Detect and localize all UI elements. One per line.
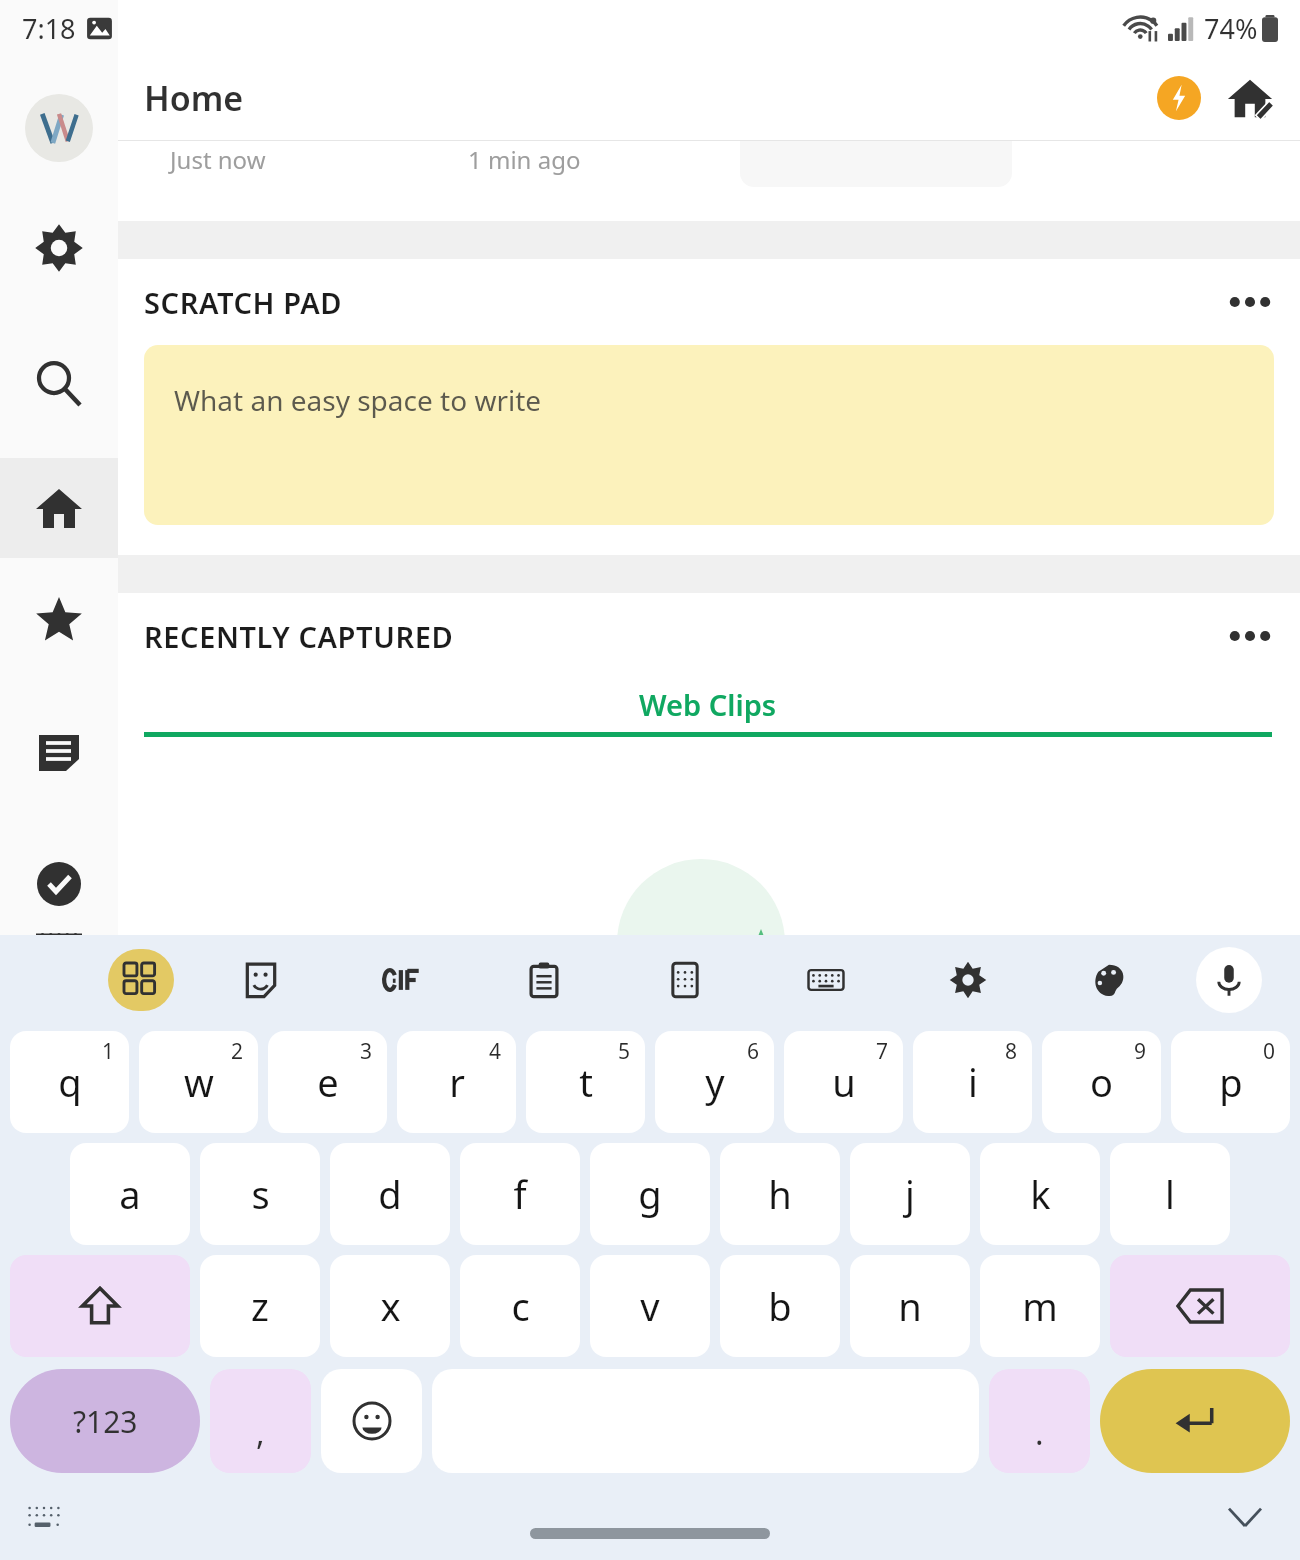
staticText: m <box>1022 1280 1058 1332</box>
button[interactable]: Settings <box>937 949 999 1011</box>
staticText: s <box>251 1168 270 1220</box>
staticText: Just now <box>170 143 266 176</box>
button[interactable]: d <box>330 1143 450 1245</box>
button[interactable]: More options <box>1222 274 1278 330</box>
staticText: 5 <box>618 1037 631 1066</box>
button[interactable]: x <box>330 1255 450 1357</box>
button[interactable]: n <box>850 1255 970 1357</box>
button[interactable]: q <box>10 1031 129 1133</box>
button[interactable]: o <box>1042 1031 1161 1133</box>
button[interactable]: 1 min ago <box>442 141 714 187</box>
button[interactable]: Stickers <box>230 949 292 1011</box>
staticText: i <box>968 1056 978 1108</box>
button[interactable]: Shift <box>10 1255 190 1357</box>
staticText: RECENTLY CAPTURED <box>144 617 454 656</box>
button[interactable]: k <box>980 1143 1100 1245</box>
button[interactable]: m <box>980 1255 1100 1357</box>
staticText: f <box>513 1168 527 1220</box>
staticText: v <box>640 1280 660 1332</box>
button[interactable]: f <box>460 1143 580 1245</box>
staticText: k <box>1030 1168 1051 1220</box>
staticText: z <box>251 1280 269 1332</box>
button[interactable]: Search <box>15 340 103 428</box>
button[interactable]: Hide keyboard <box>1218 1490 1272 1544</box>
staticText: e <box>317 1056 339 1108</box>
button[interactable]: Toolbox <box>108 949 174 1011</box>
staticText: 4 <box>489 1037 502 1066</box>
staticText: 1 <box>102 1037 115 1066</box>
staticText: 74% <box>1204 10 1258 47</box>
staticText: l <box>1165 1168 1175 1220</box>
staticText: 3 <box>360 1037 373 1066</box>
button[interactable]: Customize home <box>1222 70 1278 126</box>
staticText: 2 <box>231 1037 244 1066</box>
button[interactable]: e <box>268 1031 387 1133</box>
staticText: h <box>768 1168 792 1220</box>
button[interactable]: Clipboard <box>513 949 575 1011</box>
staticText: Home <box>144 75 244 121</box>
button[interactable]: Quick capture <box>1152 71 1206 125</box>
staticText: 9 <box>1134 1037 1147 1066</box>
button[interactable]: ?123 <box>10 1369 200 1473</box>
button[interactable]: c <box>460 1255 580 1357</box>
button[interactable]: Emoji <box>321 1369 422 1473</box>
staticText: j <box>905 1168 915 1220</box>
staticText: , <box>256 1411 265 1455</box>
button[interactable]: Tasks <box>15 840 103 928</box>
button[interactable]: GIF <box>371 949 433 1011</box>
button[interactable]: u <box>784 1031 903 1133</box>
button[interactable]: Keyboard layout <box>18 1491 70 1543</box>
staticText: d <box>378 1168 402 1220</box>
staticText: 6 <box>747 1037 760 1066</box>
staticText: 0 <box>1263 1037 1276 1066</box>
button[interactable]: v <box>590 1255 710 1357</box>
button[interactable]: a <box>70 1143 190 1245</box>
button[interactable]: b <box>720 1255 840 1357</box>
button[interactable]: Voice input <box>1196 947 1262 1013</box>
staticText: x <box>380 1280 401 1332</box>
button[interactable]: . <box>989 1369 1090 1473</box>
staticText: 1 min ago <box>468 143 581 176</box>
button[interactable]: s <box>200 1143 320 1245</box>
button[interactable]: Web Clips <box>144 679 1300 737</box>
button[interactable]: One-handed <box>795 949 857 1011</box>
button[interactable]: More options <box>1222 608 1278 664</box>
button[interactable]: Account <box>25 94 93 162</box>
button[interactable]: Settings <box>15 204 103 292</box>
button[interactable]: j <box>850 1143 970 1245</box>
button[interactable]: Just now <box>144 141 416 187</box>
button[interactable]: y <box>655 1031 774 1133</box>
button[interactable]: t <box>526 1031 645 1133</box>
button[interactable]: p <box>1171 1031 1290 1133</box>
button[interactable]: i <box>913 1031 1032 1133</box>
button[interactable]: l <box>1110 1143 1230 1245</box>
button[interactable]: Enter <box>1100 1369 1290 1473</box>
staticText: ?123 <box>73 1401 138 1442</box>
staticText: . <box>1035 1411 1044 1455</box>
staticText: q <box>58 1056 82 1108</box>
staticText: 7:18 <box>22 10 76 47</box>
button[interactable]: Themes <box>1078 949 1140 1011</box>
button[interactable]: Backspace <box>1110 1255 1290 1357</box>
button[interactable]: Notes <box>15 708 103 796</box>
staticText: r <box>449 1056 465 1108</box>
staticText: p <box>1219 1056 1243 1108</box>
button[interactable]: w <box>139 1031 258 1133</box>
button[interactable]: z <box>200 1255 320 1357</box>
staticText: y <box>705 1056 725 1108</box>
button[interactable]: What an easy space to write <box>144 345 1274 525</box>
button[interactable]: Shortcuts <box>15 576 103 664</box>
staticText: 7 <box>876 1037 889 1066</box>
button[interactable]: r <box>397 1031 516 1133</box>
staticText: n <box>898 1280 922 1332</box>
staticText: g <box>638 1168 662 1220</box>
button[interactable]: g <box>590 1143 710 1245</box>
button[interactable]: Home <box>0 458 118 558</box>
button[interactable]: h <box>720 1143 840 1245</box>
button[interactable]: Modes <box>654 949 716 1011</box>
button[interactable]: , <box>210 1369 311 1473</box>
staticText: a <box>119 1168 141 1220</box>
staticText: u <box>832 1056 856 1108</box>
